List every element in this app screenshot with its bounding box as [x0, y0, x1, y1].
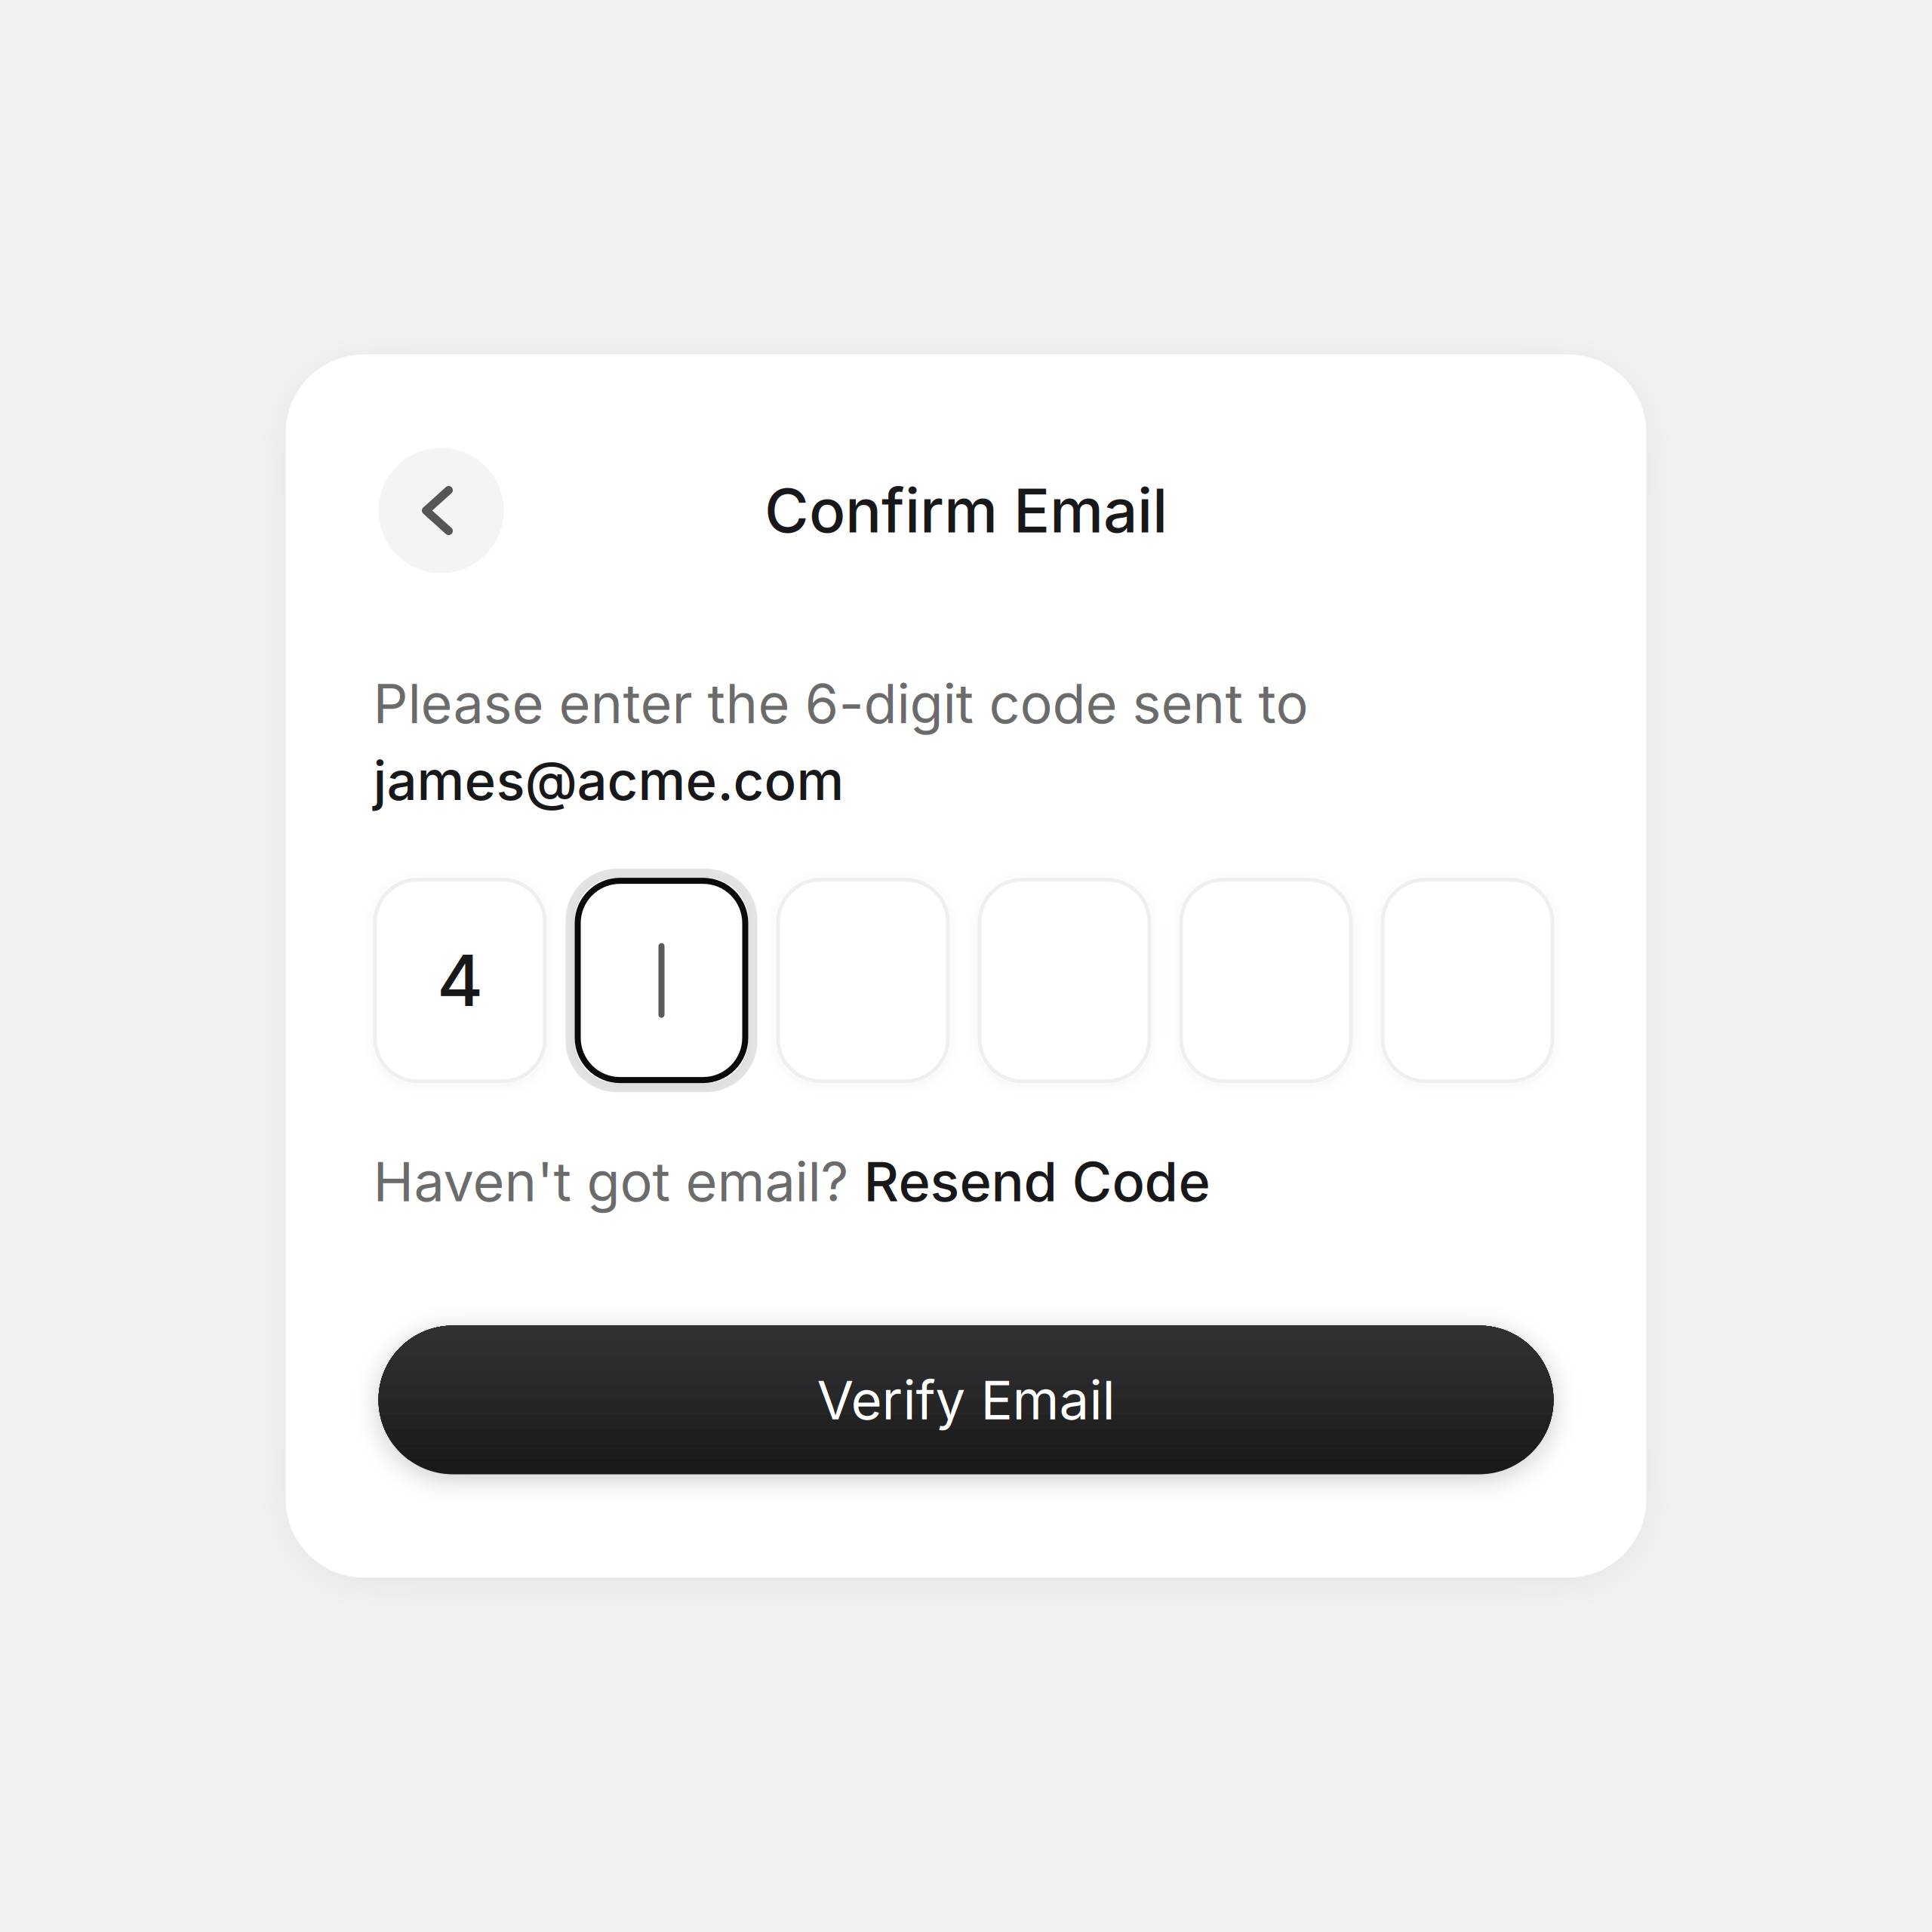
- staticText: Verify Email: [817, 1368, 1115, 1432]
- staticText: Confirm Email: [764, 474, 1168, 547]
- button[interactable]: Haven't got email?: [373, 1149, 1210, 1214]
- staticText: 4: [437, 938, 483, 1023]
- button[interactable]: Back: [373, 448, 504, 573]
- button[interactable]: Verify Email: [378, 1326, 1554, 1474]
- staticText: Resend Code: [864, 1149, 1210, 1214]
- staticText: Haven't got email?: [373, 1149, 864, 1214]
- staticText: james@acme.com: [373, 748, 844, 813]
- staticText: Please enter the 6-digit code sent to: [373, 671, 1308, 736]
